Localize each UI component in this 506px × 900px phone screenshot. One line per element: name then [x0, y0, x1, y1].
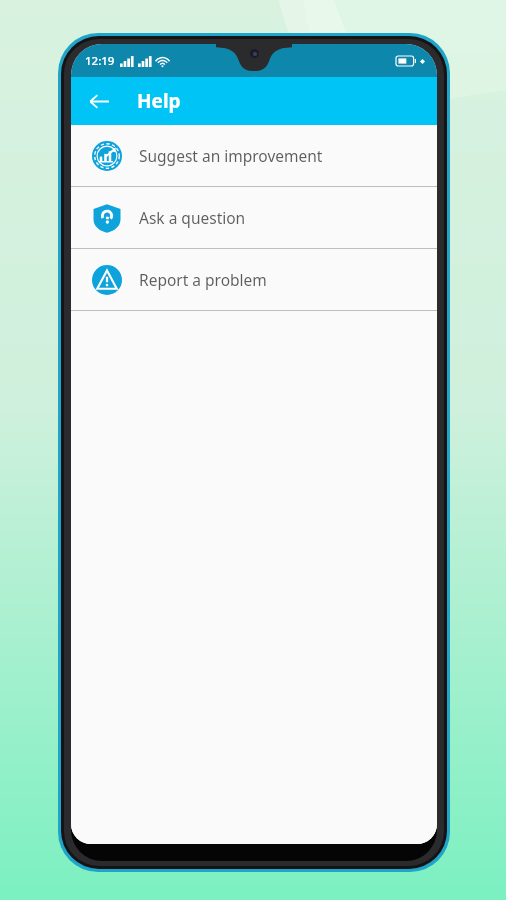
staticText: Ask a question [139, 207, 246, 228]
staticText: Report a problem [139, 269, 267, 290]
staticText: Suggest an improvement [139, 145, 323, 166]
button[interactable]: Suggest an improvement [71, 125, 437, 186]
button[interactable]: Report a problem [71, 249, 437, 310]
button[interactable]: Ask a question [71, 187, 437, 248]
staticText: Help [137, 88, 181, 114]
staticText: 12:19 [85, 53, 115, 69]
button[interactable]: Back [79, 81, 119, 121]
